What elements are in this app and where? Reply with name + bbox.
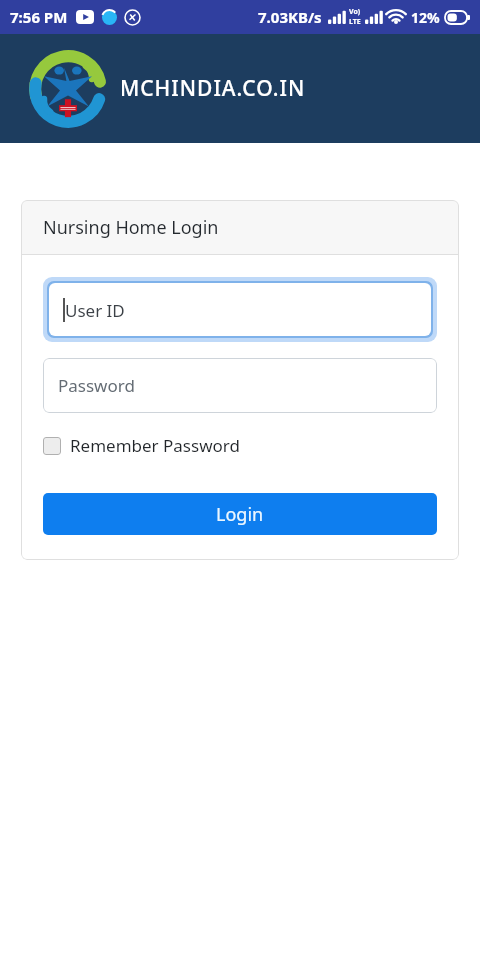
staticText: 7.03KB/s	[258, 7, 322, 27]
staticText: Password	[58, 374, 135, 397]
staticText: Remember Password	[70, 434, 240, 457]
button[interactable]: Login	[43, 493, 437, 535]
staticText: MCHINDIA.CO.IN	[120, 74, 306, 103]
staticText: Vo)	[349, 7, 361, 17]
staticText: 7:56 PM	[10, 7, 68, 27]
staticText: Nursing Home Login	[43, 215, 219, 240]
button[interactable]: User ID	[49, 283, 431, 336]
button[interactable]: Password	[43, 358, 437, 413]
staticText: Login	[216, 502, 264, 527]
staticText: User ID	[65, 299, 125, 322]
staticText: LTE	[349, 17, 361, 27]
staticText: 12%	[411, 8, 440, 27]
button[interactable]: Remember Password	[43, 434, 240, 457]
